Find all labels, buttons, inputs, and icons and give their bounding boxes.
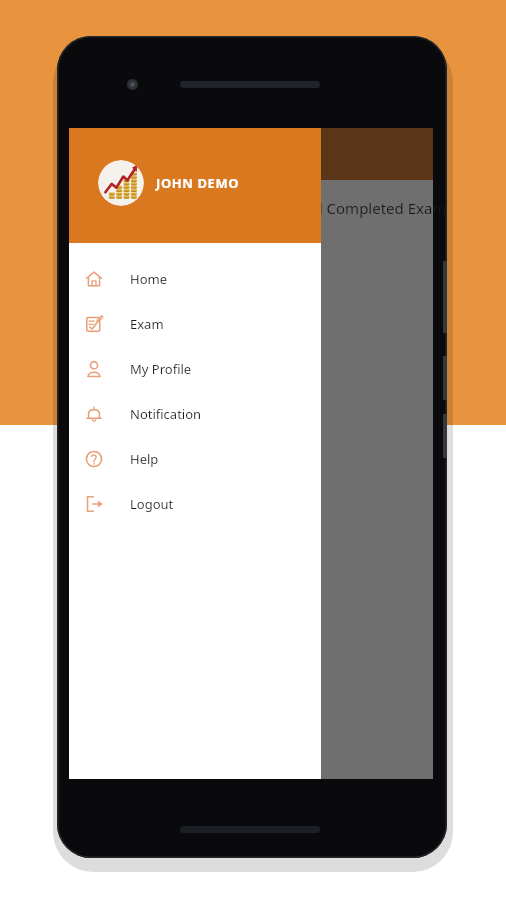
staticText: Upcoming and Completed Exam [219, 198, 447, 218]
staticText: Exam [130, 315, 164, 333]
button[interactable]: My Profile [69, 346, 321, 391]
other: Home [85, 270, 103, 288]
staticText: Help [130, 450, 159, 468]
button[interactable]: Notification [69, 391, 321, 436]
other: My Profile [85, 360, 103, 378]
button[interactable]: Logout [69, 481, 321, 526]
staticText: JOHN DEMO [156, 174, 240, 192]
other: Exam [85, 315, 103, 333]
button[interactable]: JOHN DEMO [69, 160, 321, 206]
button[interactable]: Home [69, 256, 321, 301]
button[interactable]: Exam [69, 301, 321, 346]
staticText: Notification [130, 405, 202, 423]
staticText: Home [130, 270, 167, 288]
staticText: My Profile [130, 360, 192, 378]
staticText: Logout [130, 495, 174, 513]
button[interactable]: Help [69, 436, 321, 481]
other: Notification [85, 405, 103, 423]
other: Help [85, 450, 103, 468]
other: Logout [85, 495, 103, 513]
